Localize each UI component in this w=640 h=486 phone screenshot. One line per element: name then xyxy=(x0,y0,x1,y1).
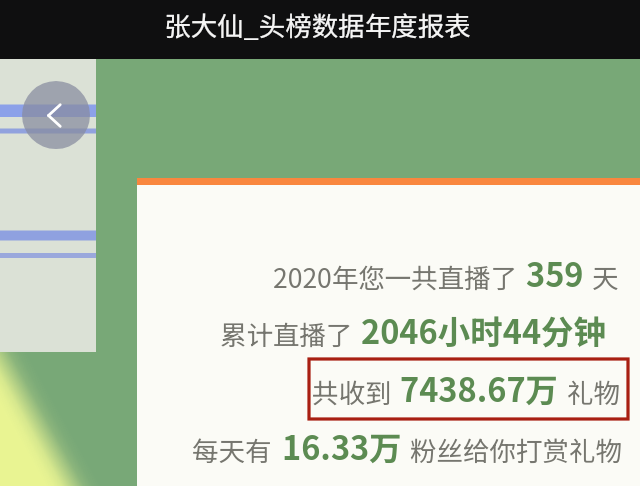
staticText: 2046小时44分钟 xyxy=(361,306,607,353)
staticText: 天 xyxy=(592,257,619,295)
staticText: 359 xyxy=(526,249,584,296)
staticText: 16.33万 xyxy=(282,422,402,469)
staticText: 粉丝给你打赏礼物 xyxy=(410,430,622,468)
staticText: 2020年您一共直播了 xyxy=(273,257,518,295)
staticText: 礼物 xyxy=(567,372,620,410)
staticText: 张大仙_头榜数据年度报表 xyxy=(164,5,471,43)
staticText: 累计直播了 xyxy=(220,314,353,352)
staticText: 7438.67万 xyxy=(400,364,559,411)
button[interactable]: Back xyxy=(22,81,90,149)
staticText: 每天有 xyxy=(192,430,272,468)
staticText: 共收到 xyxy=(312,372,392,410)
